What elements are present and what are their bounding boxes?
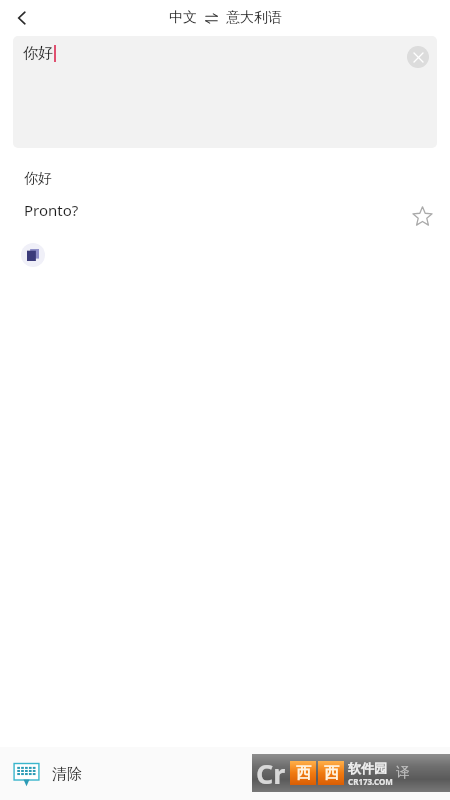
staticText: 软件园 xyxy=(348,760,387,776)
staticText: 意大利语 xyxy=(226,9,282,27)
button[interactable]: 清除 xyxy=(8,756,82,792)
button[interactable]: Clear text xyxy=(407,46,429,68)
button[interactable]: 中文 xyxy=(169,9,282,27)
staticText: 中文 xyxy=(169,9,197,27)
staticText: 西 xyxy=(296,764,311,783)
staticText: 清除 xyxy=(52,765,82,784)
staticText: CR173.COM xyxy=(348,776,393,787)
staticText: 你好 xyxy=(24,170,52,188)
button[interactable]: Back xyxy=(0,0,44,36)
staticText: 你好 xyxy=(23,44,53,63)
staticText: 西 xyxy=(324,764,339,783)
staticText: 译 xyxy=(396,764,410,782)
staticText: Cr xyxy=(256,755,286,792)
button[interactable]: 你好 xyxy=(13,36,437,148)
staticText: Pronto? xyxy=(24,200,79,220)
button[interactable]: Favorite xyxy=(406,200,438,232)
button[interactable]: Dictionary xyxy=(21,243,45,267)
